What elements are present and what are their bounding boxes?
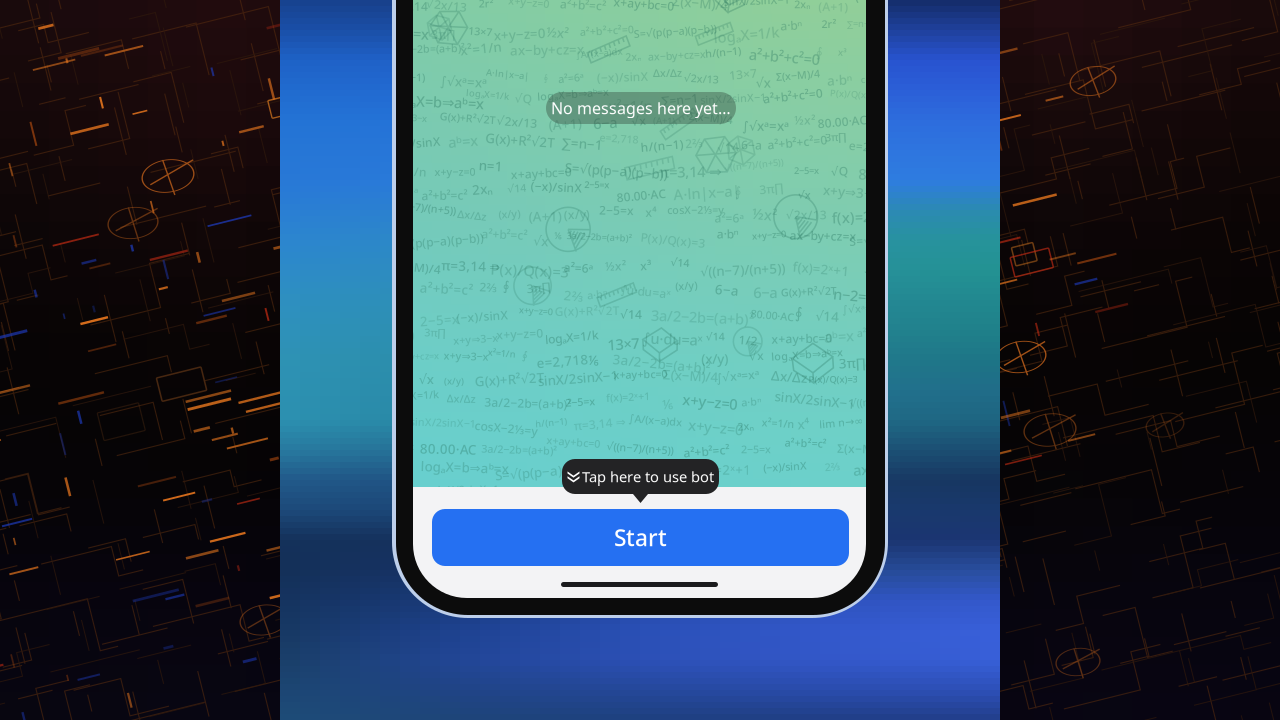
staticText: a²+b²=c²: [421, 187, 467, 203]
staticText: 13×7: [468, 24, 492, 38]
staticText: 13×7: [389, 372, 409, 385]
staticText: x+ay+bc=0: [511, 165, 572, 181]
staticText: 2⅔: [825, 459, 841, 474]
staticText: (−x)/sinX: [531, 179, 582, 195]
staticText: 80.00·AC: [858, 165, 916, 184]
staticText: x²=1/n: [389, 163, 427, 179]
staticText: Δx/Δz: [457, 208, 486, 222]
staticText: x²=1/n: [762, 416, 795, 430]
staticText: P(x)/Q(x)=3: [640, 232, 705, 248]
staticText: No messages here yet…: [551, 97, 731, 119]
staticText: √Q: [831, 163, 848, 179]
staticText: (x/y): [675, 278, 697, 293]
staticText: a²+b²=c²: [683, 443, 729, 459]
staticText: 2⅔: [685, 135, 703, 151]
staticText: f(x)=2ˣ+1: [606, 390, 650, 404]
staticText: f(x)=2ˣ+1: [793, 260, 850, 278]
staticText: Σ(x−M)/4: [663, 367, 719, 384]
staticText: x+y−z=0: [508, 0, 549, 9]
staticText: Σ(x−M)/4: [776, 68, 820, 82]
staticText: x²=1/n: [488, 347, 516, 359]
staticText: (−x)/sinX: [855, 0, 906, 6]
staticText: lim n→∞: [819, 415, 863, 429]
staticText: sinX/2sinX−1: [775, 391, 856, 409]
staticText: √x: [749, 348, 764, 364]
staticText: 2xₙ: [625, 49, 641, 64]
staticText: h/(n−1): [389, 70, 425, 84]
staticText: x²=1/n: [460, 39, 501, 57]
staticText: 3π∏: [431, 26, 455, 42]
staticText: ∫√xᵃ=xᵃ: [863, 254, 910, 272]
staticText: a·bⁿ: [827, 71, 852, 89]
staticText: f(x)=2ˣ+1: [832, 207, 892, 226]
staticText: sinX/2sinX−1: [700, 91, 766, 105]
staticText: a·bⁿ: [389, 287, 411, 303]
staticText: 6−a: [753, 283, 777, 302]
staticText: √14: [507, 181, 526, 195]
staticText: 2xₙ: [472, 180, 492, 198]
staticText: ∑=n−1: [847, 17, 874, 30]
staticText: (A+1): [653, 114, 675, 127]
staticText: a²+b²=c²: [785, 436, 827, 450]
staticText: x+ay+bc=0: [613, 367, 667, 381]
staticText: π=3,14: [389, 0, 428, 14]
staticText: a²=6ᵃ: [389, 183, 418, 198]
staticText: 80.00·AC: [616, 187, 666, 203]
staticText: √((n−7)/(n+5)): [606, 441, 673, 455]
staticText: ∫√xᵃ=xᵃ: [389, 485, 421, 498]
staticText: 2r²: [389, 457, 408, 475]
staticText: (A+1): [818, 0, 848, 15]
staticText: √Q: [515, 90, 532, 106]
staticText: ax−by+cz=x: [648, 48, 706, 62]
staticText: 2−5=x: [389, 440, 414, 453]
staticText: 6−a: [715, 281, 739, 299]
staticText: logₐX=b⇒aᵇ=x: [421, 458, 509, 476]
staticText: Δx/Δz: [771, 368, 807, 385]
staticText: ∑=n−1: [661, 91, 698, 107]
staticText: √14: [706, 329, 725, 343]
staticText: x+y−z=0: [688, 417, 743, 437]
staticText: h/(n−1): [641, 138, 684, 153]
staticText: 3a/2−2b=(a+b)²: [481, 442, 557, 457]
staticText: a²+b²+c²=0: [749, 47, 820, 67]
staticText: x³: [838, 46, 846, 58]
staticText: √x: [533, 232, 548, 250]
staticText: Σ(x−M)/4: [389, 259, 441, 275]
staticText: n−2=x/n: [833, 286, 889, 306]
staticText: 2r²: [389, 311, 408, 329]
staticText: (A+1): [529, 207, 562, 225]
staticText: a²+b²+c²=0: [763, 88, 823, 104]
staticText: logₐX=b⇒aᵇ=x: [771, 347, 843, 361]
staticText: 2r²: [479, 0, 494, 10]
staticText: x+y−z=0: [496, 326, 543, 342]
staticText: ∫u·du=aˣ: [621, 283, 671, 299]
staticText: Σ(x−M)/4: [689, 111, 733, 125]
staticText: a²=6ᵃ: [558, 71, 584, 85]
staticText: G(x)+R²√2T: [485, 131, 554, 149]
staticText: x³: [644, 485, 656, 502]
staticText: (−x)/sinX: [597, 69, 648, 85]
staticText: S=√(p(p−a)(p−b)): [849, 230, 944, 246]
staticText: sinX/2sinX−1: [410, 415, 476, 430]
staticText: √14: [620, 306, 642, 322]
staticText: 2−5=x: [741, 442, 771, 456]
staticText: S=√(p(p−a)(p−b)): [389, 233, 484, 249]
staticText: P(x)/Q(x)=3: [830, 88, 879, 100]
staticText: S=√(p(p−a)(p−b)): [495, 462, 598, 480]
button[interactable]: Start: [432, 509, 849, 566]
staticText: h/(n−1): [535, 416, 567, 428]
staticText: ax−by+cz=x: [389, 350, 439, 362]
staticText: 2xₙ: [794, 0, 810, 11]
staticText: 2−5=x: [420, 311, 459, 329]
staticText: (x/y): [701, 350, 728, 367]
staticText: 2xₙ: [737, 419, 753, 433]
button[interactable]: Tap here to use bot: [562, 459, 719, 503]
staticText: 2−5=x: [794, 164, 819, 177]
staticText: x²=1/n: [609, 96, 653, 115]
staticText: A·ln|x−a|: [673, 183, 740, 202]
staticText: Δx/Δz: [447, 391, 476, 406]
staticText: x+y−z=0: [752, 229, 786, 241]
staticText: ax−by+cz=x: [790, 228, 857, 244]
staticText: sinX/2sinX−1: [433, 482, 499, 496]
staticText: (−x)/sinX: [389, 135, 440, 151]
